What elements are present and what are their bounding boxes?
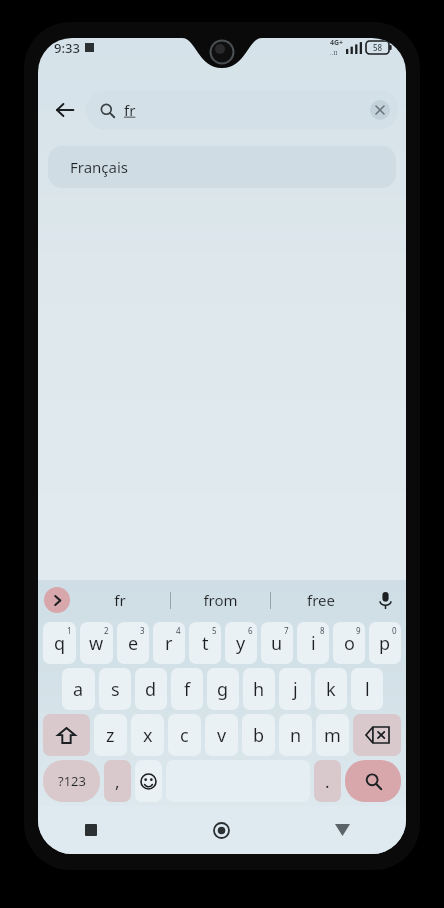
button[interactable]: . [314,760,341,802]
button[interactable]: Emoji [135,760,162,802]
button[interactable]: q [43,622,76,664]
staticText: w [89,631,104,656]
staticText: v [217,723,227,748]
staticText: 0 [392,625,397,636]
button[interactable]: fr [86,90,398,130]
button[interactable]: g [207,668,239,710]
button[interactable]: ?123 [43,760,100,802]
staticText: m [324,723,341,748]
staticText: 7 [284,625,289,636]
button[interactable]: Recents [38,806,160,854]
staticText: x [143,723,153,748]
button[interactable]: y [225,622,257,664]
staticText: u [271,631,283,656]
button[interactable]: Search [345,760,401,802]
button[interactable]: h [243,668,275,710]
staticText: f [184,677,191,702]
button[interactable]: n [279,714,312,756]
staticText: fr [114,590,126,610]
staticText: p [379,631,391,656]
staticText: j [293,677,298,702]
button[interactable]: d [135,668,167,710]
button[interactable]: j [279,668,311,710]
staticText: n [290,723,302,748]
staticText: e [128,631,139,656]
button[interactable]: Clear [370,100,390,120]
button[interactable]: More suggestions [44,587,70,613]
button[interactable]: s [99,668,131,710]
staticText: 2 [104,625,109,636]
button[interactable]: f [171,668,203,710]
staticText: o [344,631,355,656]
button[interactable]: Français [48,146,396,188]
staticText: free [307,590,335,610]
button[interactable]: p [369,622,401,664]
staticText: h [253,677,265,702]
staticText: 5 [212,625,217,636]
button[interactable]: free [271,580,370,620]
button[interactable]: Voice input [370,580,400,620]
staticText: 8 [320,625,325,636]
staticText: Français [70,157,129,177]
button[interactable]: w [80,622,113,664]
staticText: i [311,631,316,656]
button[interactable]: Back [46,91,84,129]
button[interactable]: Backspace [353,714,401,756]
staticText: ?123 [58,772,86,790]
staticText: s [111,677,120,702]
button[interactable]: i [297,622,329,664]
button[interactable]: c [168,714,201,756]
staticText: z [106,723,115,748]
button[interactable]: z [94,714,127,756]
staticText: q [54,631,66,656]
staticText: c [180,723,189,748]
button[interactable]: Back [283,806,406,854]
button[interactable]: fr [70,580,170,620]
staticText: fr [124,100,136,120]
staticText: ..II [330,49,338,57]
button[interactable]: r [153,622,185,664]
staticText: t [202,631,209,656]
staticText: k [326,677,336,702]
button[interactable]: e [117,622,149,664]
button[interactable]: x [131,714,164,756]
staticText: r [165,631,173,656]
staticText: from [203,590,238,610]
staticText: y [236,631,246,656]
button[interactable]: , [104,760,131,802]
staticText: 9:33 [54,39,80,57]
button[interactable]: m [316,714,349,756]
staticText: b [253,723,265,748]
staticText: 9 [356,625,361,636]
button[interactable]: t [189,622,221,664]
button[interactable]: o [333,622,365,664]
staticText: 4 [176,625,181,636]
staticText: . [325,770,330,793]
button[interactable]: from [171,580,270,620]
button[interactable]: a [62,668,95,710]
staticText: 58 [373,42,383,53]
staticText: 4G+ [330,38,344,48]
button[interactable]: Shift [43,714,90,756]
staticText: 1 [67,625,72,636]
staticText: a [73,677,84,702]
staticText: l [365,677,370,702]
staticText: 6 [248,625,253,636]
button[interactable]: b [242,714,275,756]
button[interactable]: l [351,668,383,710]
staticText: d [145,677,157,702]
button[interactable]: v [205,714,238,756]
staticText: 3 [140,625,145,636]
button[interactable]: u [261,622,293,664]
staticText: , [115,770,120,793]
button[interactable]: k [315,668,347,710]
staticText: g [217,677,229,702]
button[interactable]: Home [160,806,283,854]
